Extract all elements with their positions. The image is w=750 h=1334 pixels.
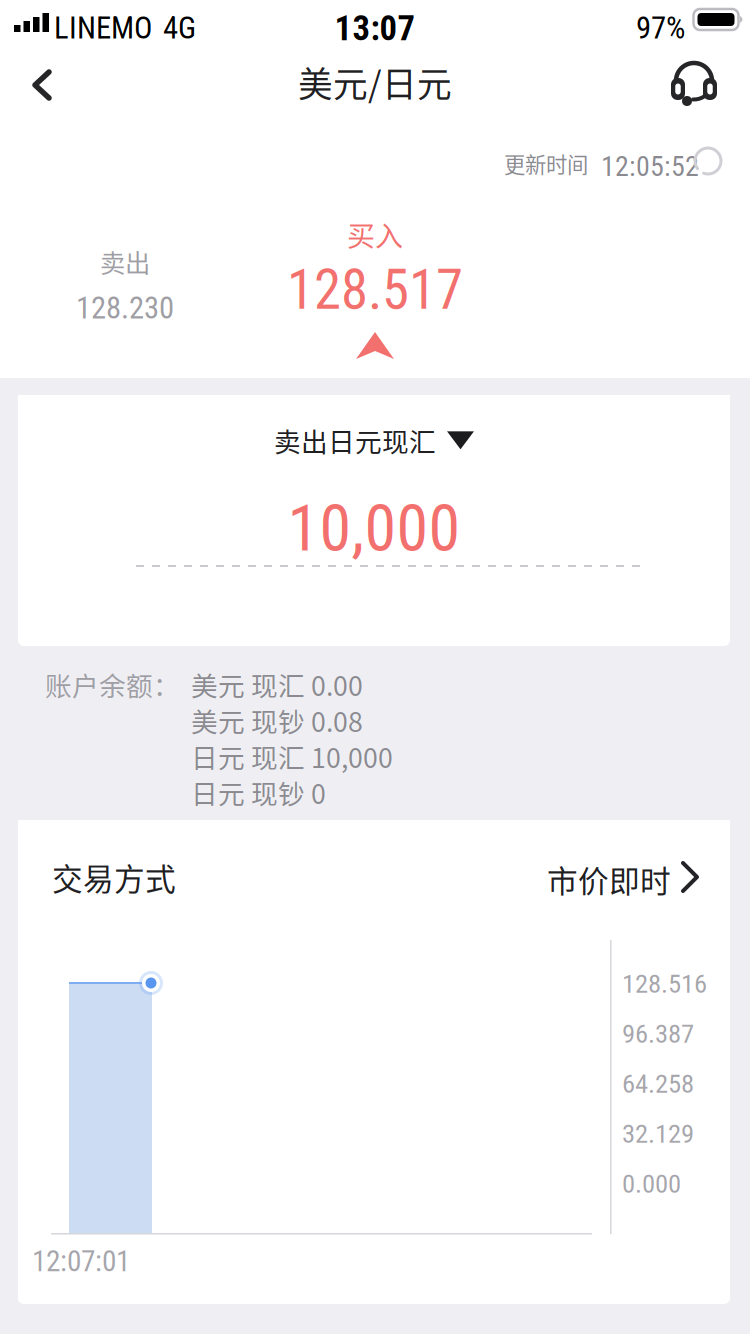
staticText: 128.517 — [287, 258, 463, 322]
staticText: 64.258 — [622, 1068, 694, 1099]
staticText: 97% — [636, 10, 685, 46]
staticText: 日元 现钞 0 — [191, 773, 326, 812]
staticText: 更新时间 — [504, 148, 588, 179]
staticText: 128.230 — [76, 290, 174, 326]
staticText: 买入 — [347, 214, 403, 254]
staticText: 0.000 — [622, 1168, 681, 1199]
staticText: 4G — [163, 10, 196, 46]
button[interactable]: Back — [12, 53, 74, 117]
staticText: 美元 现汇 0.00 — [191, 665, 363, 704]
button[interactable]: 交易方式 — [18, 820, 730, 926]
staticText: 12:07:01 — [32, 1244, 130, 1278]
staticText: 交易方式 — [52, 855, 176, 899]
staticText: 13:07 — [334, 8, 415, 49]
staticText: 卖出 — [100, 243, 150, 280]
staticText: 96.387 — [622, 1018, 694, 1049]
staticText: 32.129 — [622, 1118, 694, 1149]
staticText: 12:05:52 — [601, 150, 699, 183]
staticText: 美元/日元 — [298, 57, 452, 107]
staticText: 10,000 — [287, 491, 460, 566]
staticText: 卖出日元现汇 — [274, 421, 436, 460]
staticText: 市价即时 — [547, 857, 671, 901]
staticText: 美元 现钞 0.08 — [191, 701, 363, 740]
button[interactable]: 卖出日元现汇 — [18, 395, 730, 481]
button[interactable]: Customer support — [660, 52, 738, 118]
staticText: 账户余额： — [45, 665, 180, 704]
staticText: LINEMO — [54, 10, 152, 46]
staticText: 128.516 — [622, 968, 707, 999]
staticText: 日元 现汇 10,000 — [191, 737, 393, 776]
